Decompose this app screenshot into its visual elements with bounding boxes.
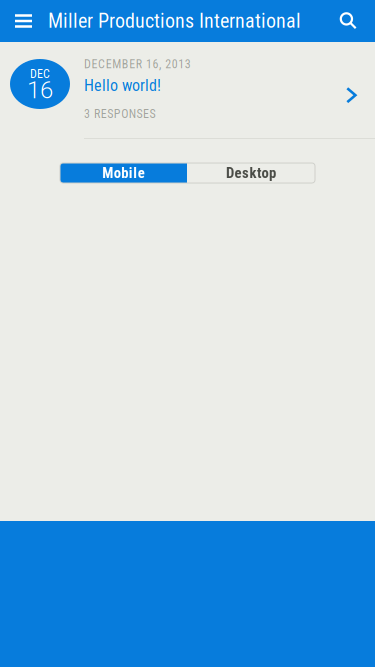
staticText: Hello world! bbox=[84, 76, 161, 95]
staticText: DECEMBER 16, 2013 bbox=[84, 57, 191, 71]
staticText: Desktop bbox=[226, 164, 276, 182]
staticText: 16 bbox=[27, 76, 53, 104]
button[interactable]: Search bbox=[322, 0, 375, 42]
staticText: DEC bbox=[30, 67, 50, 81]
staticText: Mobile bbox=[102, 164, 145, 182]
button[interactable]: Mobile bbox=[60, 163, 187, 183]
staticText: Miller Productions International bbox=[48, 9, 301, 33]
staticText: 3 RESPONSES bbox=[84, 107, 155, 121]
button[interactable]: Desktop bbox=[187, 163, 315, 183]
button[interactable]: Menu bbox=[0, 0, 47, 42]
button[interactable]: DEC bbox=[0, 42, 375, 138]
